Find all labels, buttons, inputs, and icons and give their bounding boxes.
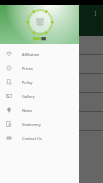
staticText: Gallery: [22, 94, 35, 99]
staticText: Renewal: [4, 118, 24, 125]
staticText: Terms: [4, 80, 19, 87]
staticText: Policy: [22, 80, 33, 85]
button[interactable]: Contact Us: [0, 131, 79, 145]
button[interactable]: Terms: [0, 74, 103, 92]
button[interactable]: Gallery: [0, 89, 79, 103]
staticText: News: [22, 108, 32, 113]
button[interactable]: More options: [91, 9, 100, 18]
button[interactable]: SAVE: [0, 36, 103, 54]
staticText: Affiliation: [22, 52, 40, 57]
button[interactable]: Renewal: [0, 112, 103, 130]
button[interactable]: Claims: [0, 93, 103, 111]
button[interactable]: Prices: [0, 61, 79, 75]
staticText: POLICY: [4, 22, 26, 30]
button[interactable]: Stationery: [0, 117, 79, 131]
staticText: Stationery: [22, 122, 41, 127]
staticText: Prices: [22, 66, 33, 71]
staticText: Usage: [4, 61, 19, 68]
button[interactable]: Policy: [0, 75, 79, 89]
staticText: Contact Us: [22, 136, 42, 141]
staticText: SAVE: [4, 42, 16, 49]
button[interactable]: Usage: [0, 55, 103, 73]
button[interactable]: News: [0, 103, 79, 117]
button[interactable]: Affiliation: [0, 47, 79, 61]
